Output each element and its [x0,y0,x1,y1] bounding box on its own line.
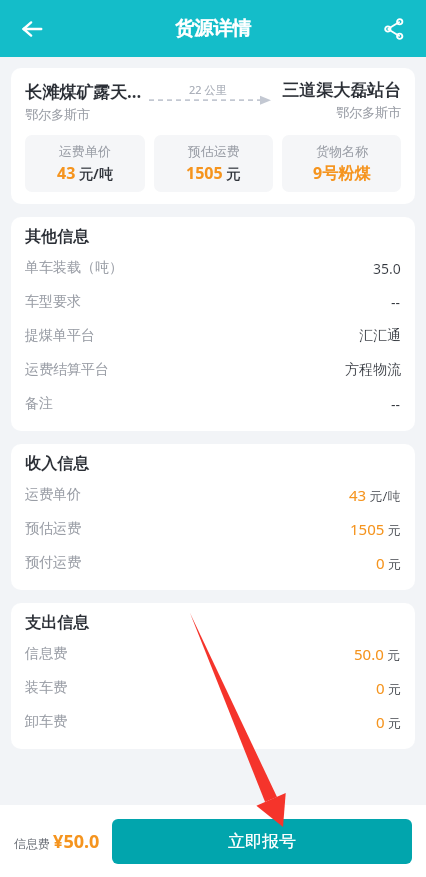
staticText: 22 公里 [189,82,227,97]
button[interactable]: 立即报号 [112,819,412,864]
button[interactable]: Back [10,7,54,51]
staticText: 43 元/吨 [57,162,113,184]
staticText: 鄂尔多斯市 [336,104,401,120]
staticText: 预估运费 [25,520,81,538]
button[interactable]: Share [372,7,416,51]
staticText: 货源详情 [175,17,251,41]
staticText: 0 元 [376,678,401,698]
staticText: 三道渠大磊站台 [282,80,401,101]
staticText: 运费单价 [59,143,111,159]
staticText: 立即报号 [228,831,296,852]
staticText: 车型要求 [25,293,81,311]
staticText: 方程物流 [345,361,401,379]
staticText: 单车装载（吨） [25,259,123,277]
staticText: 43 元/吨 [349,485,401,505]
staticText: -- [391,293,401,312]
staticText: 卸车费 [25,713,67,731]
staticText: 运费单价 [25,486,81,504]
staticText: 汇汇通 [359,327,401,345]
staticText: -- [391,395,401,414]
staticText: 0 元 [376,712,401,732]
staticText: 运费结算平台 [25,361,109,379]
staticText: 提煤单平台 [25,327,95,345]
staticText: 预付运费 [25,554,81,572]
staticText: 信息费 ¥50.0 [14,829,100,854]
staticText: 35.0 [373,259,401,278]
staticText: 鄂尔多斯市 [25,106,90,122]
staticText: 其他信息 [25,227,89,247]
staticText: 预估运费 [188,143,240,159]
staticText: 9号粉煤 [313,162,371,184]
staticText: 支出信息 [25,613,89,633]
staticText: 装车费 [25,679,67,697]
staticText: 长滩煤矿露天... [25,80,142,103]
staticText: 信息费 [25,645,67,663]
staticText: 备注 [25,395,53,413]
staticText: 货物名称 [316,143,368,159]
staticText: 收入信息 [25,454,89,474]
staticText: 0 元 [376,553,401,573]
staticText: 1505 元 [350,519,401,539]
staticText: 50.0 元 [354,644,401,664]
staticText: 1505 元 [186,162,241,184]
